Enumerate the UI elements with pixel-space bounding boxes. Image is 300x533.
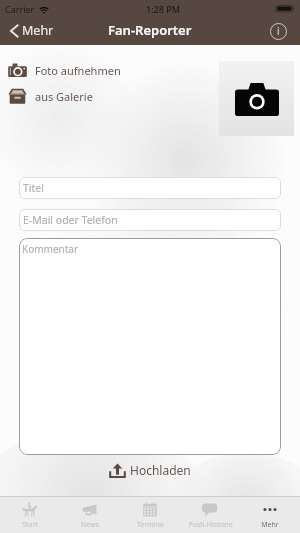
button[interactable]: Foto aufnehmen <box>0 61 160 80</box>
staticText: Hochladen <box>130 462 191 478</box>
staticText: Carrier <box>5 3 35 15</box>
staticText: aus Galerie <box>35 89 93 104</box>
button[interactable]: aus Galerie <box>0 86 160 106</box>
staticText: Titel <box>23 181 44 195</box>
staticText: 1:28 PM <box>146 3 180 15</box>
button[interactable]: News <box>60 497 120 533</box>
staticText: Start <box>22 520 38 530</box>
button[interactable]: E-Mail oder Telefon <box>19 209 281 231</box>
staticText: Mehr <box>22 22 54 39</box>
staticText: E-Mail oder Telefon <box>23 213 118 227</box>
button[interactable]: Termine <box>120 497 180 533</box>
button[interactable]: Push-Historie <box>180 497 240 533</box>
button[interactable]: Start <box>0 497 60 533</box>
staticText: Kommentar <box>22 242 79 256</box>
staticText: Foto aufnehmen <box>35 63 121 78</box>
staticText: Mehr <box>261 520 279 530</box>
staticText: Fan-Reporter <box>108 21 192 39</box>
staticText: i <box>277 24 280 38</box>
staticText: News <box>81 520 99 530</box>
staticText: Push-Historie <box>188 520 233 530</box>
button[interactable]: Photo preview <box>219 61 294 136</box>
button[interactable]: Mehr <box>240 497 300 533</box>
staticText: Termine <box>137 520 164 530</box>
button[interactable]: Titel <box>19 177 281 199</box>
button[interactable]: Mehr <box>0 17 60 44</box>
button[interactable]: Info <box>266 19 290 43</box>
button[interactable]: Hochladen <box>105 459 195 481</box>
button[interactable]: Kommentar <box>19 238 281 455</box>
